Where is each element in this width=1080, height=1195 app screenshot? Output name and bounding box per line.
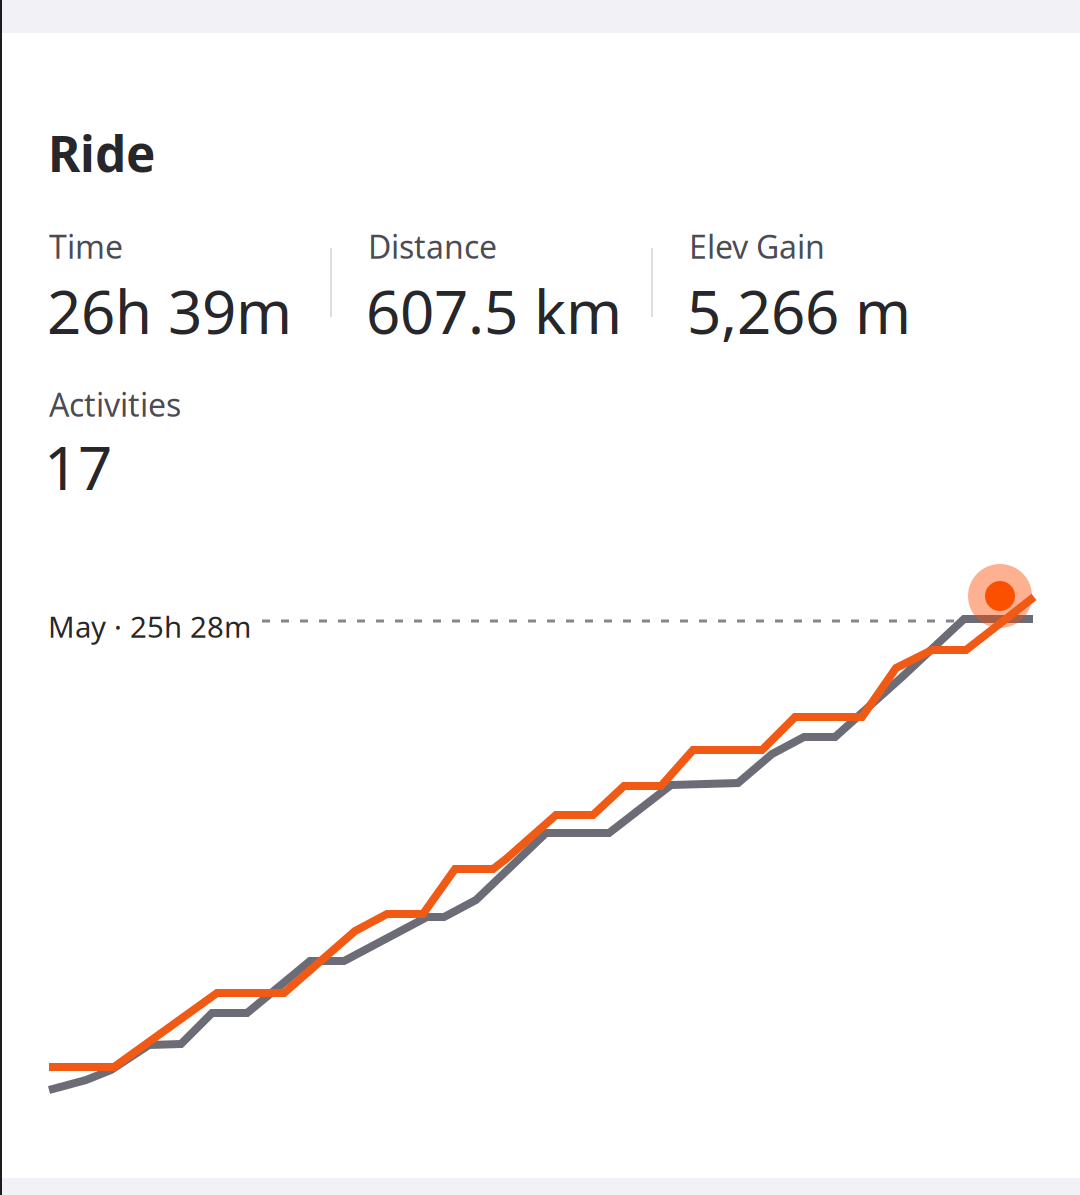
staticText: May · 25h 28m (48, 607, 251, 646)
button[interactable]: Monthly progress chart, May, 25 hours 28… (0, 556, 1080, 1110)
staticText: 26h 39m (47, 271, 292, 351)
staticText: Elev Gain (689, 225, 825, 267)
button[interactable]: Activities (50, 391, 320, 492)
staticText: Ride (48, 120, 155, 185)
button[interactable]: Distance (369, 233, 639, 336)
staticText: 5,266 m (687, 271, 911, 351)
button[interactable]: Elev Gain (690, 233, 960, 336)
staticText: Distance (368, 225, 497, 267)
staticText: 607.5 km (366, 271, 622, 351)
staticText: Time (49, 225, 123, 267)
staticText: Activities (49, 383, 181, 425)
staticText: 17 (44, 427, 112, 507)
button[interactable]: Time (50, 233, 320, 336)
